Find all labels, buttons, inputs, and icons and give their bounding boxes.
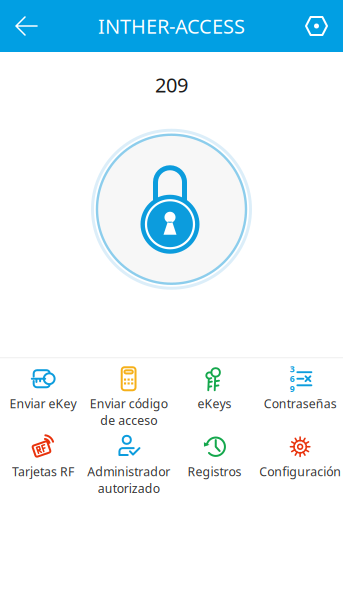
button[interactable]: Registros [171,435,257,503]
staticText: Configuración [259,463,341,480]
button[interactable]: Settings [288,0,343,52]
staticText: Registros [187,463,241,480]
staticText: 209 [155,71,188,98]
button[interactable]: Back [0,0,55,52]
button[interactable]: eKeys [171,367,257,435]
staticText: de acceso [100,412,157,429]
staticText: Administrador [87,463,170,480]
staticText: Tarjetas RF [12,463,74,480]
staticText: INTHER-ACCESS [98,12,245,40]
button[interactable]: Enviar código [86,367,172,435]
button[interactable]: Tarjetas RF [0,435,86,503]
staticText: eKeys [197,395,231,412]
staticText: Contraseñas [264,395,337,412]
staticText: 3 [290,363,295,375]
staticText: autorizado [98,480,160,497]
button[interactable]: 3 [257,367,343,435]
staticText: 9 [290,383,295,394]
staticText: Enviar código [90,395,168,412]
button[interactable]: Administrador [86,435,172,503]
staticText: 6 [290,373,295,385]
button[interactable]: Enviar eKey [0,367,86,435]
staticText: Enviar eKey [9,395,76,412]
button[interactable]: Configuración [257,435,343,503]
